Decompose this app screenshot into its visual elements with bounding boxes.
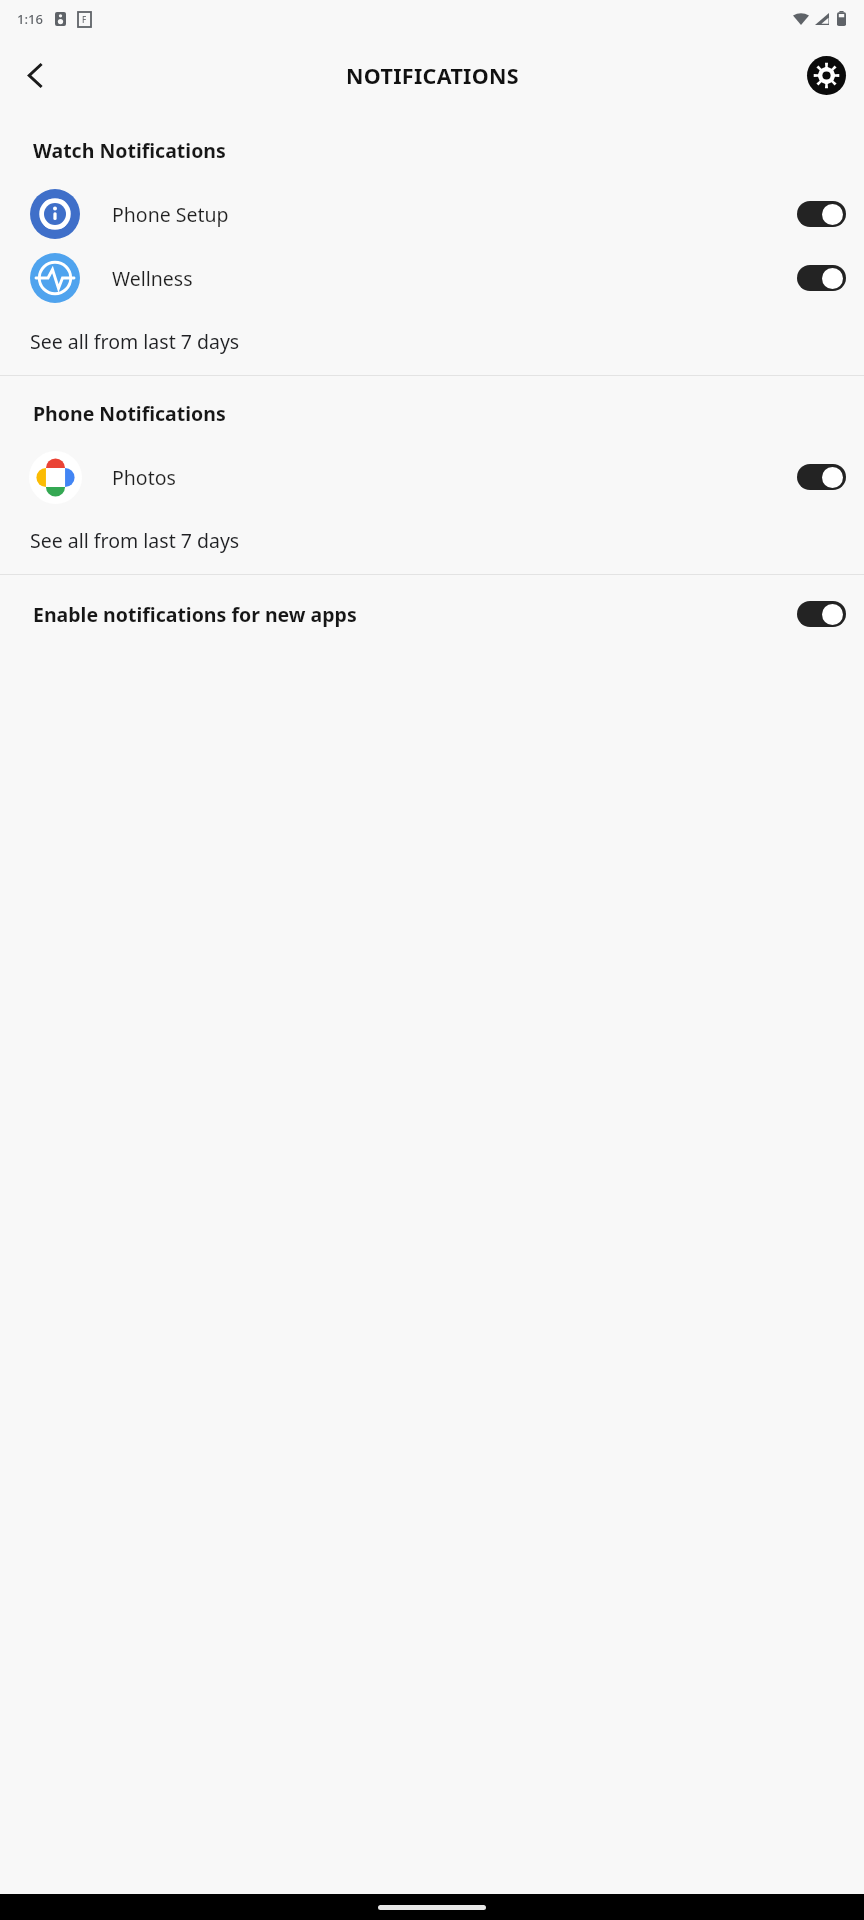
button[interactable]: See all from last 7 days — [0, 324, 864, 359]
staticText: Enable notifications for new apps — [33, 601, 357, 628]
button[interactable]: Toggle on — [797, 464, 846, 490]
staticText: Phone Notifications — [33, 400, 226, 427]
button[interactable]: Back — [6, 46, 64, 104]
button[interactable]: Enable notifications for new apps — [0, 575, 864, 653]
button[interactable]: Settings — [805, 54, 847, 96]
staticText: Photos — [112, 464, 176, 491]
staticText: Phone Setup — [112, 201, 229, 228]
button[interactable]: Wellness — [0, 246, 864, 310]
staticText: See all from last 7 days — [30, 527, 240, 554]
staticText: Watch Notifications — [33, 137, 226, 164]
button[interactable]: See all from last 7 days — [0, 523, 864, 558]
button[interactable]: Photos — [0, 445, 864, 509]
button[interactable]: Toggle on — [797, 601, 846, 627]
staticText: See all from last 7 days — [30, 328, 240, 355]
button[interactable]: Toggle on — [797, 201, 846, 227]
button[interactable]: Phone Setup — [0, 182, 864, 246]
button[interactable]: Toggle on — [797, 265, 846, 291]
staticText: 1:16 — [17, 10, 43, 28]
staticText: F — [82, 14, 87, 25]
staticText: Wellness — [112, 265, 193, 292]
staticText: NOTIFICATIONS — [346, 61, 519, 90]
